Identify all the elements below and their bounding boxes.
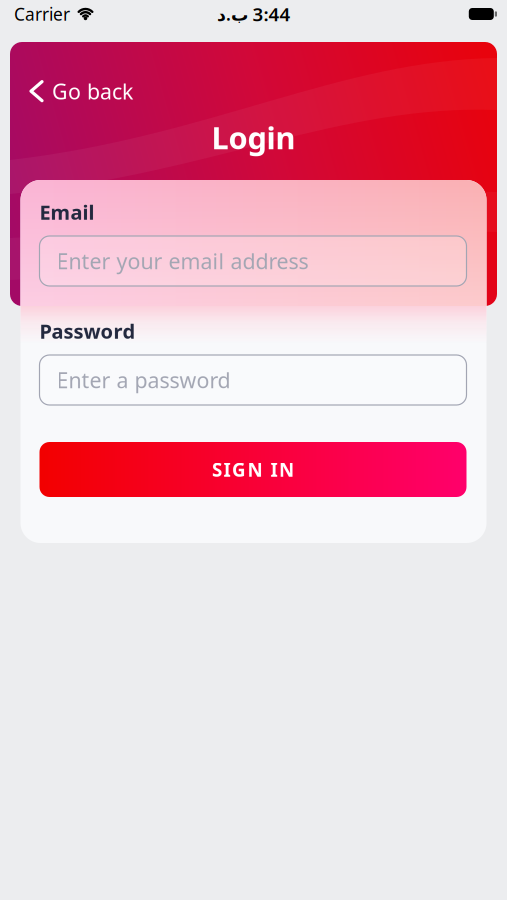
staticText: SIGN IN (212, 457, 294, 482)
staticText: Enter your email address (56, 247, 308, 275)
staticText: ب.د (216, 2, 247, 25)
staticText: 3:44 (252, 2, 290, 26)
staticText: Password (39, 318, 135, 344)
button[interactable]: Enter a password (39, 355, 466, 405)
staticText: Email (39, 199, 94, 225)
button[interactable]: Go back (10, 71, 133, 111)
staticText: Enter a password (56, 366, 230, 394)
button[interactable]: Sign in (39, 442, 466, 497)
button[interactable]: Enter your email address (39, 236, 466, 286)
staticText: Go back (52, 77, 133, 105)
staticText: Login (211, 117, 295, 158)
staticText: Carrier (14, 2, 70, 25)
